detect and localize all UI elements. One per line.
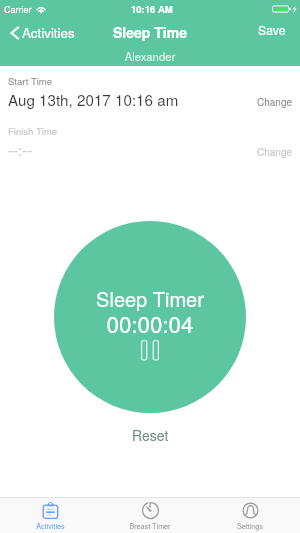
staticText: Reset: [132, 425, 169, 445]
button[interactable]: Reset: [110, 418, 191, 452]
button[interactable]: Change: [247, 140, 300, 164]
staticText: --:--: [8, 139, 33, 161]
button[interactable]: Change: [247, 90, 300, 114]
staticText: Change: [257, 95, 293, 109]
staticText: Finish Time: [8, 124, 58, 138]
button[interactable]: Back to Activities: [0, 19, 83, 46]
button[interactable]: Start Time: [0, 72, 300, 116]
button[interactable]: Breast Timer: [100, 498, 200, 533]
staticText: 00:00:04: [54, 307, 246, 339]
staticText: Settings: [237, 521, 263, 531]
staticText: Sleep Timer: [54, 284, 246, 313]
button[interactable]: Activities: [0, 498, 100, 533]
button[interactable]: Finish Time: [0, 122, 300, 166]
staticText: Carrier: [4, 3, 32, 16]
staticText: Change: [257, 145, 293, 159]
staticText: Breast Timer: [129, 521, 171, 531]
staticText: Activities: [36, 521, 65, 531]
staticText: 10:16 AM: [131, 2, 173, 16]
button[interactable]: Settings: [200, 498, 300, 533]
staticText: Activities: [22, 23, 75, 42]
staticText: Start Time: [8, 74, 53, 88]
staticText: Aug 13th, 2017 10:16 am: [8, 89, 179, 111]
staticText: Save: [258, 21, 286, 38]
button[interactable]: Pause sleep timer: [54, 221, 246, 413]
button[interactable]: Save: [248, 15, 300, 44]
staticText: Alexander: [0, 48, 300, 64]
staticText: Sleep Time: [113, 22, 187, 42]
